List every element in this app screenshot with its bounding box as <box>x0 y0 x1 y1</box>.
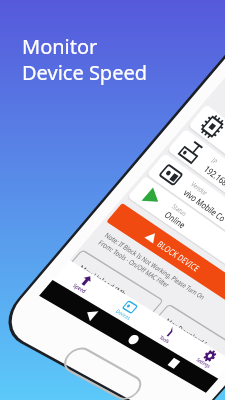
button[interactable]: Monitor Device Speed <box>22 33 148 86</box>
other: Phone preview <box>0 0 225 388</box>
staticText: Monitor Device Speed <box>22 33 148 86</box>
